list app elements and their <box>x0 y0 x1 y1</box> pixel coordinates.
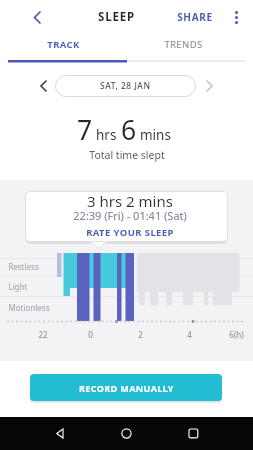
staticText: 0 <box>88 329 93 340</box>
staticText: SLEEP <box>98 9 135 25</box>
staticText: 22 <box>38 329 48 340</box>
staticText: TRACK <box>47 38 80 51</box>
staticText: 2 <box>138 329 143 340</box>
staticText: 6 <box>121 112 137 148</box>
button[interactable]: TRACK <box>0 33 127 56</box>
staticText: hrs <box>96 126 117 144</box>
staticText: RATE YOUR SLEEP <box>86 226 174 239</box>
staticText: mins <box>140 126 171 144</box>
button[interactable] <box>200 76 218 96</box>
button[interactable]: TRENDS <box>120 33 246 56</box>
staticText: RECORD MANUALLY <box>79 382 174 394</box>
button[interactable]: SHARE <box>168 7 222 26</box>
button[interactable] <box>46 420 74 448</box>
staticText: Total time slept <box>89 148 165 162</box>
button[interactable] <box>228 5 246 29</box>
button[interactable]: RATE YOUR SLEEP <box>28 224 231 240</box>
staticText: SAT, 28 JAN <box>100 80 151 92</box>
button[interactable] <box>179 420 207 448</box>
staticText: Restless <box>8 261 39 272</box>
staticText: Light <box>8 281 28 292</box>
staticText: 7 <box>77 112 93 148</box>
button[interactable] <box>26 6 48 28</box>
staticText: 3 hrs 2 mins <box>87 191 173 211</box>
button[interactable]: RECORD MANUALLY <box>30 374 222 401</box>
button[interactable] <box>36 76 54 96</box>
staticText: TRENDS <box>164 38 203 51</box>
staticText: 4 <box>187 329 192 340</box>
button[interactable] <box>112 420 140 448</box>
staticText: Motionless <box>8 302 50 313</box>
button[interactable]: SAT, 28 JAN <box>55 75 196 97</box>
staticText: SHARE <box>177 10 213 24</box>
staticText: 22:39 (Fri) - 01:41 (Sat) <box>73 208 187 223</box>
staticText: 6(h) <box>229 329 244 340</box>
